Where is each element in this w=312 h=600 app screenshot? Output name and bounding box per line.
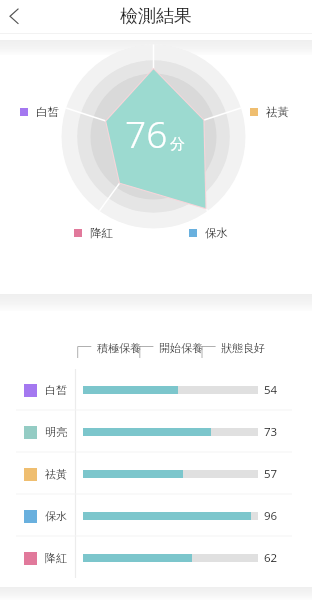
button[interactable]: 保水 xyxy=(189,226,228,240)
staticText: 降紅 xyxy=(90,226,113,240)
staticText: 分 xyxy=(170,135,185,154)
staticText: 白皙 xyxy=(36,105,59,119)
staticText: 57 xyxy=(264,466,278,482)
button[interactable]: 降紅 xyxy=(74,226,113,240)
staticText: 76 xyxy=(125,108,168,158)
staticText: 62 xyxy=(264,550,278,566)
staticText: 祛黃 xyxy=(266,105,289,119)
staticText: 檢測結果 xyxy=(120,5,192,28)
button[interactable]: 祛黃 xyxy=(250,105,289,119)
staticText: 白皙 xyxy=(45,383,67,397)
button[interactable]: 白皙 xyxy=(0,379,312,401)
button[interactable]: 祛黃 xyxy=(0,463,312,485)
staticText: 保水 xyxy=(45,509,67,523)
button[interactable]: 白皙 xyxy=(20,105,59,119)
staticText: 明亮 xyxy=(45,425,67,439)
staticText: 73 xyxy=(264,424,278,440)
staticText: 積極保養 xyxy=(97,341,141,355)
button[interactable]: 保水 xyxy=(0,505,312,527)
staticText: 祛黃 xyxy=(45,467,67,481)
staticText: 保水 xyxy=(205,226,228,240)
staticText: 開始保養 xyxy=(159,341,203,355)
button[interactable]: 明亮 xyxy=(0,421,312,443)
staticText: 狀態良好 xyxy=(221,341,265,355)
staticText: 降紅 xyxy=(45,551,67,565)
button[interactable]: Back xyxy=(0,0,34,34)
button[interactable]: 降紅 xyxy=(0,547,312,569)
staticText: 54 xyxy=(264,382,278,398)
staticText: 96 xyxy=(264,508,278,524)
